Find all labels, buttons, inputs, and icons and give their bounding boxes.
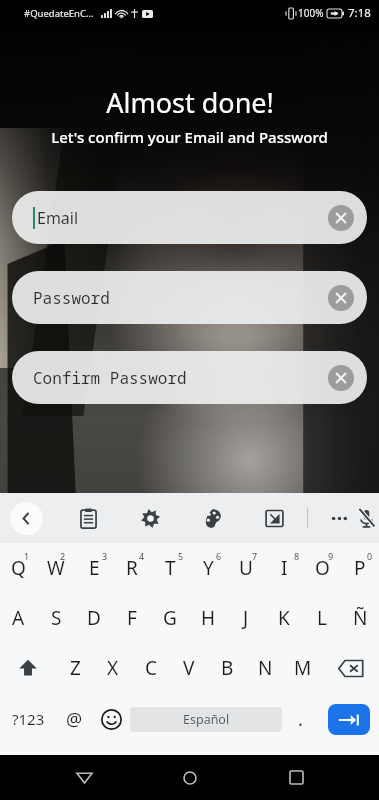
staticText: W <box>47 555 65 581</box>
button[interactable]: Z <box>56 643 94 693</box>
staticText: 8 <box>294 550 300 562</box>
staticText: H <box>201 605 216 631</box>
staticText: Email <box>37 207 79 229</box>
staticText: N <box>258 655 273 681</box>
button[interactable]: J <box>227 593 265 643</box>
staticText: G <box>163 605 177 631</box>
button[interactable]: M <box>284 643 322 693</box>
button[interactable]: R <box>113 543 151 593</box>
button[interactable]: Shift <box>0 643 56 693</box>
button[interactable]: . <box>282 693 319 745</box>
button[interactable]: E <box>75 543 113 593</box>
button[interactable]: Clear Email <box>328 205 354 231</box>
button[interactable]: G <box>151 593 189 643</box>
button[interactable]: Back <box>10 502 43 535</box>
button[interactable]: Y <box>189 543 227 593</box>
button[interactable]: ?123 <box>0 693 56 745</box>
button[interactable]: Backspace <box>322 643 379 693</box>
button[interactable]: Back <box>61 755 107 800</box>
staticText: V <box>183 655 195 681</box>
button[interactable]: F <box>113 593 151 643</box>
staticText: L <box>317 605 327 631</box>
button[interactable]: I <box>265 543 303 593</box>
staticText: Ñ <box>353 605 368 631</box>
staticText: @ <box>66 707 83 732</box>
staticText: M <box>294 655 312 681</box>
button[interactable]: Password <box>12 271 367 324</box>
staticText: ?123 <box>12 709 45 729</box>
staticText: 7 <box>252 550 258 562</box>
button[interactable]: Clear Confirm Password <box>328 365 354 391</box>
button[interactable]: B <box>208 643 246 693</box>
button[interactable]: K <box>265 593 303 643</box>
staticText: 1 <box>24 550 30 562</box>
button[interactable]: V <box>170 643 208 693</box>
button[interactable]: Theme <box>197 503 227 533</box>
button[interactable]: A <box>0 593 37 643</box>
button[interactable]: Resize keyboard <box>259 503 289 533</box>
staticText: S <box>51 605 62 631</box>
staticText: C <box>145 655 158 681</box>
staticText: J <box>243 605 249 631</box>
button[interactable]: S <box>37 593 75 643</box>
staticText: O <box>315 555 330 581</box>
staticText: 0 <box>367 550 373 562</box>
button[interactable]: Confirm Password <box>12 351 367 404</box>
button[interactable]: More options <box>324 503 354 533</box>
button[interactable]: C <box>132 643 170 693</box>
staticText: Almost done! <box>106 84 274 121</box>
staticText: X <box>107 655 119 681</box>
button[interactable]: Email <box>12 191 367 244</box>
button[interactable]: U <box>227 543 265 593</box>
button[interactable]: H <box>189 593 227 643</box>
staticText: Password <box>33 287 110 309</box>
button[interactable]: Home <box>167 755 213 800</box>
staticText: A <box>12 605 25 631</box>
staticText: T <box>165 555 176 581</box>
staticText: B <box>221 655 234 681</box>
staticText: R <box>126 555 138 581</box>
staticText: Y <box>203 555 214 581</box>
staticText: Español <box>183 711 230 728</box>
button[interactable]: @ <box>56 693 93 745</box>
staticText: E <box>89 555 100 581</box>
staticText: Z <box>70 655 81 681</box>
staticText: I <box>281 555 288 581</box>
button[interactable]: W <box>37 543 75 593</box>
staticText: 9 <box>328 550 334 562</box>
staticText: Q <box>11 555 26 581</box>
staticText: 2 <box>60 550 66 562</box>
button[interactable]: Voice input off <box>354 503 379 533</box>
staticText: K <box>278 605 290 631</box>
button[interactable]: Español <box>130 707 282 732</box>
staticText: F <box>127 605 137 631</box>
staticText: Confirm Password <box>33 367 187 389</box>
button[interactable]: O <box>303 543 341 593</box>
staticText: P <box>354 555 366 581</box>
button[interactable]: Q <box>0 543 37 593</box>
button[interactable]: Ñ <box>341 593 379 643</box>
staticText: Let's confirm your Email and Password <box>51 127 328 147</box>
button[interactable]: Clipboard <box>73 503 103 533</box>
staticText: 3 <box>102 550 108 562</box>
staticText: . <box>298 707 303 732</box>
staticText: U <box>239 555 253 581</box>
staticText: 4 <box>139 550 145 562</box>
button[interactable]: N <box>246 643 284 693</box>
button[interactable]: Clear Password <box>328 285 354 311</box>
staticText: 7:18 <box>348 5 371 21</box>
button[interactable]: X <box>94 643 132 693</box>
staticText: D <box>87 605 101 631</box>
button[interactable]: L <box>303 593 341 643</box>
button[interactable]: Recent apps <box>273 755 319 800</box>
button[interactable]: P <box>341 543 379 593</box>
button[interactable]: D <box>75 593 113 643</box>
staticText: #QuedateEnC… <box>24 7 94 20</box>
button[interactable]: Enter <box>328 704 370 735</box>
button[interactable]: Settings <box>135 503 165 533</box>
staticText: 6 <box>216 550 222 562</box>
button[interactable]: T <box>151 543 189 593</box>
staticText: 100% <box>298 6 324 20</box>
staticText: 5 <box>178 550 184 562</box>
button[interactable]: Emoji <box>93 693 130 745</box>
